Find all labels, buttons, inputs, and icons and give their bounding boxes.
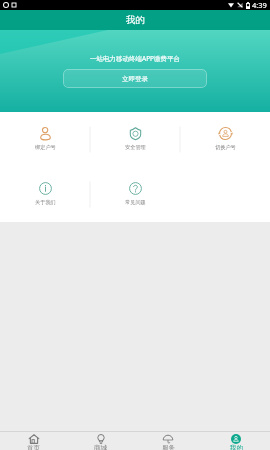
staticText: 立即登录: [122, 75, 148, 83]
staticText: 切换户号: [215, 144, 236, 151]
staticText: 我的: [126, 14, 145, 26]
button[interactable]: 关于我们: [0, 167, 90, 222]
button[interactable]: 切换户号: [180, 112, 270, 167]
button[interactable]: 绑定户号: [0, 112, 90, 167]
button[interactable]: 立即登录: [63, 69, 207, 88]
button[interactable]: 商城: [67, 432, 134, 450]
button[interactable]: 首页: [0, 432, 67, 450]
staticText: 首页: [27, 444, 40, 450]
button[interactable]: 服务: [134, 432, 202, 450]
staticText: 我的: [230, 444, 243, 450]
staticText: 安全管理: [125, 144, 146, 151]
staticText: 4:39: [252, 0, 267, 10]
staticText: 关于我们: [35, 199, 56, 206]
button[interactable]: 我的: [202, 432, 270, 450]
staticText: 商城: [94, 444, 107, 450]
staticText: 一站电力移动终端APP缴费平台: [90, 54, 181, 63]
staticText: 常见问题: [125, 199, 146, 206]
staticText: 绑定户号: [35, 144, 56, 151]
button[interactable]: 安全管理: [90, 112, 180, 167]
button[interactable]: 常见问题: [90, 167, 180, 222]
staticText: 服务: [162, 444, 175, 450]
